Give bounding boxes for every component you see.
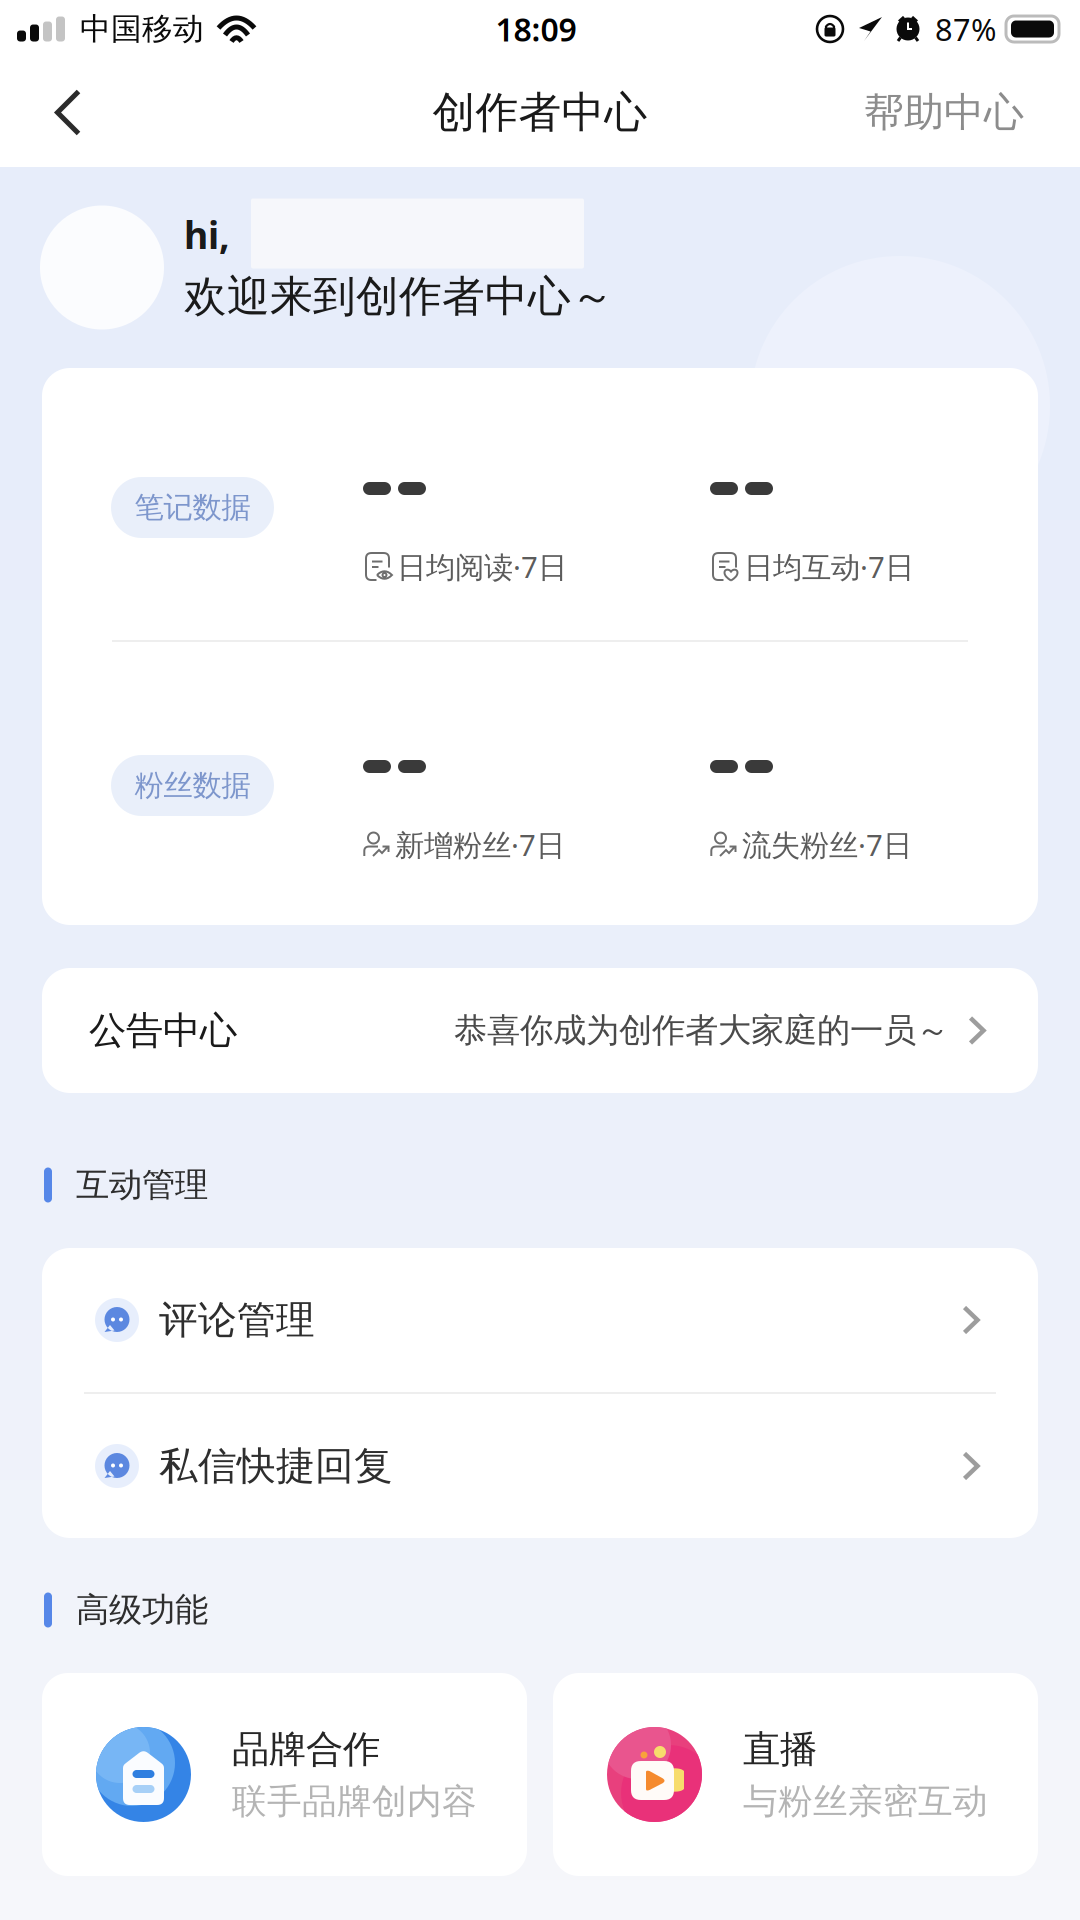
staticText: 评论管理	[159, 1296, 315, 1344]
staticText: 笔记数据	[134, 489, 250, 525]
staticText: 中国移动	[80, 10, 204, 48]
button[interactable]: 评论管理	[42, 1248, 1038, 1392]
button[interactable]: 品牌合作	[42, 1673, 527, 1876]
staticText: 品牌合作	[232, 1726, 380, 1772]
staticText: hi,	[184, 210, 230, 259]
staticText: 与粉丝亲密互动	[743, 1780, 988, 1823]
staticText: 18:09	[495, 8, 576, 50]
button[interactable]: 帮助中心	[832, 58, 1080, 167]
staticText: 恭喜你成为创作者大家庭的一员～	[454, 1010, 949, 1051]
staticText: 私信快捷回复	[159, 1442, 393, 1490]
staticText: 流失粉丝·7日	[742, 825, 912, 864]
staticText: 创作者中心	[432, 86, 647, 139]
staticText: 高级功能	[76, 1589, 208, 1630]
staticText: 欢迎来到创作者中心～	[184, 270, 614, 323]
staticText: 日均互动·7日	[744, 547, 914, 586]
staticText: 直播	[743, 1726, 817, 1772]
button[interactable]: 直播	[553, 1673, 1038, 1876]
staticText: 87%	[935, 9, 996, 49]
staticText: 联手品牌创内容	[232, 1780, 477, 1823]
staticText: 日均阅读·7日	[397, 547, 567, 586]
staticText: 互动管理	[76, 1164, 208, 1205]
button[interactable]: 公告中心	[42, 968, 1038, 1093]
staticText: 新增粉丝·7日	[395, 825, 565, 864]
staticText: 公告中心	[89, 1008, 237, 1053]
staticText: 粉丝数据	[134, 767, 250, 803]
button[interactable]: 私信快捷回复	[42, 1394, 1038, 1538]
button[interactable]: Back	[0, 58, 119, 167]
staticText: 帮助中心	[864, 88, 1024, 137]
